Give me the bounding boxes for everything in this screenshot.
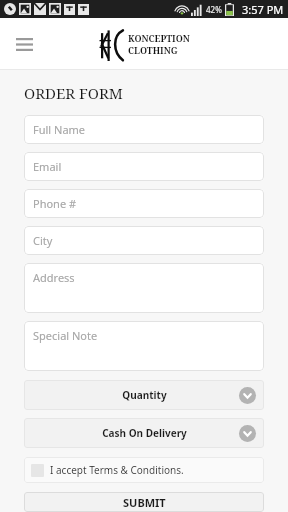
staticText: City xyxy=(33,233,53,248)
button[interactable]: Quantity xyxy=(24,380,264,410)
staticText: Address xyxy=(33,270,75,285)
staticText: ORDER FORM xyxy=(24,83,123,103)
staticText: Cash On Delivery xyxy=(102,426,187,440)
staticText: Phone # xyxy=(33,196,77,211)
staticText: Quantity xyxy=(122,388,167,402)
button[interactable]: Address xyxy=(24,263,264,313)
button[interactable]: Cash On Delivery xyxy=(24,418,264,448)
staticText: Special Note xyxy=(33,328,98,343)
staticText: KONCEPTION xyxy=(128,32,190,44)
staticText: 3:57 PM xyxy=(242,2,284,17)
button[interactable]: Email xyxy=(24,152,264,181)
staticText: 42% xyxy=(206,4,222,15)
staticText: SUBMIT xyxy=(123,495,166,510)
staticText: CLOTHING xyxy=(128,44,178,56)
button[interactable]: City xyxy=(24,226,264,255)
staticText: Full Name xyxy=(33,122,86,137)
staticText: Email xyxy=(33,159,62,174)
button[interactable]: Open navigation menu xyxy=(8,28,40,60)
button[interactable]: Special Note xyxy=(24,321,264,371)
button[interactable]: Phone # xyxy=(24,189,264,218)
button[interactable]: I accept Terms & Conditions. xyxy=(24,457,264,483)
button[interactable]: Full Name xyxy=(24,115,264,144)
staticText: I accept Terms & Conditions. xyxy=(50,463,184,477)
button[interactable]: SUBMIT xyxy=(24,492,264,512)
